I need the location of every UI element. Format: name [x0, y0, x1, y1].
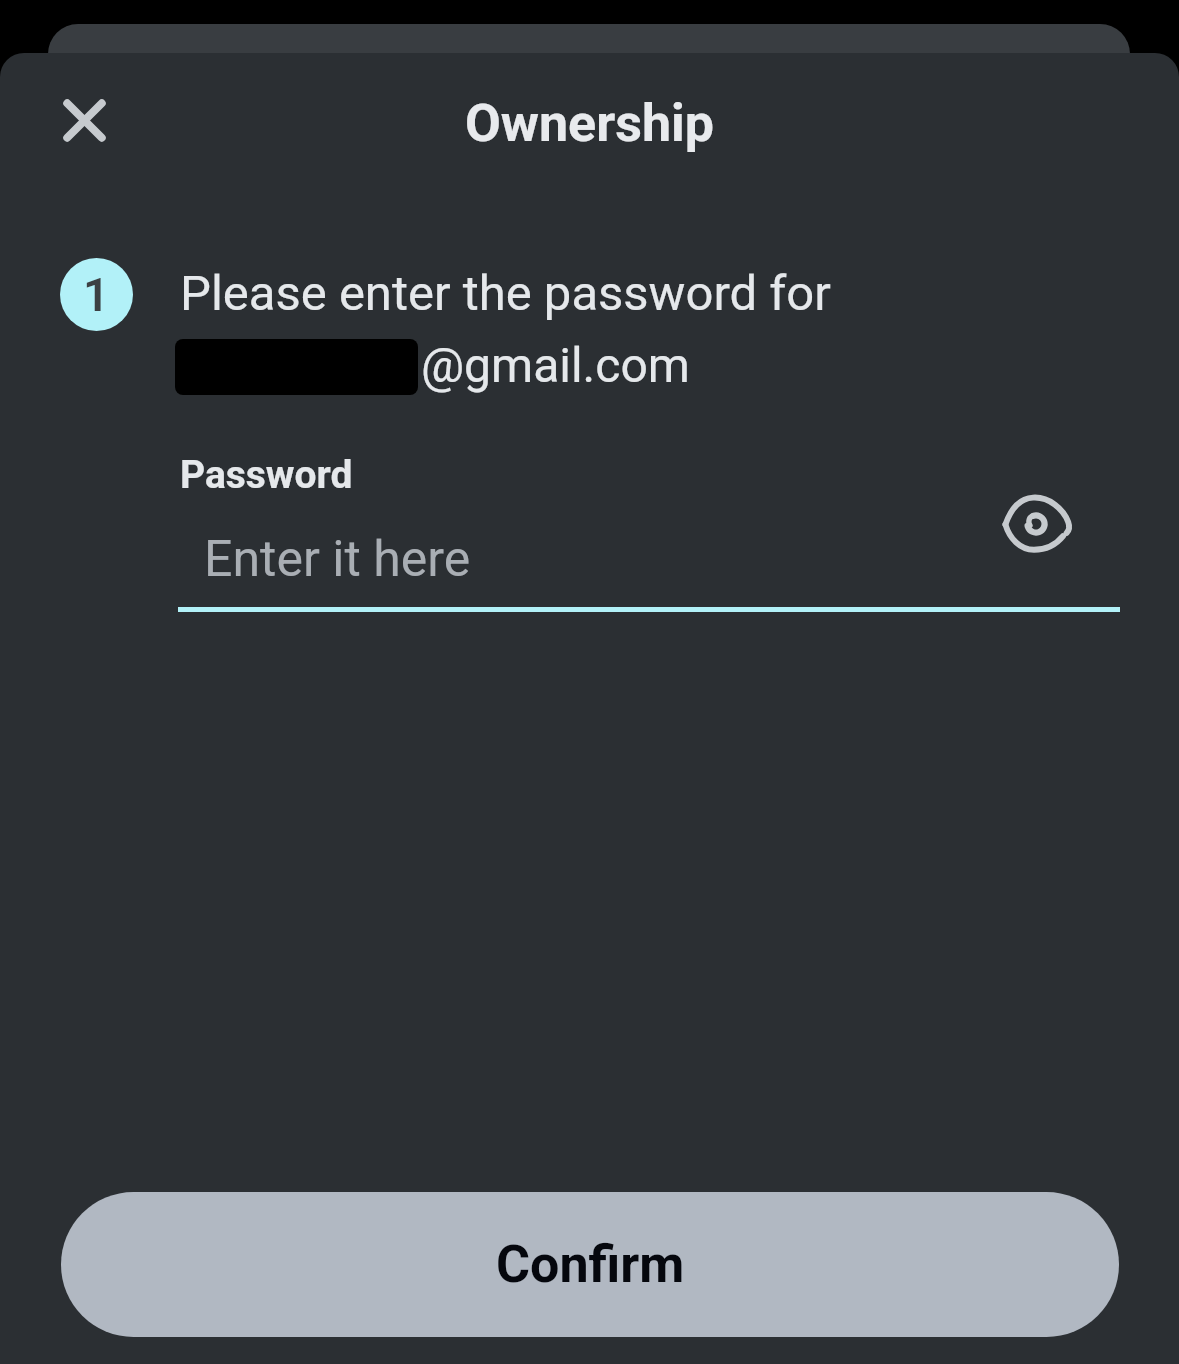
staticText: 1 [83, 268, 110, 322]
staticText: Confirm [496, 1234, 685, 1295]
staticText: Please enter the password for [180, 265, 831, 322]
button[interactable]: Confirm [61, 1192, 1119, 1337]
button[interactable]: Close [48, 84, 120, 156]
staticText: Ownership [0, 93, 1179, 154]
staticText: Password [180, 452, 353, 498]
staticText: @gmail.com [421, 337, 690, 393]
button[interactable]: Show password [992, 479, 1082, 569]
staticText: Enter it here [204, 530, 471, 589]
button[interactable]: Enter it here [178, 508, 1120, 612]
